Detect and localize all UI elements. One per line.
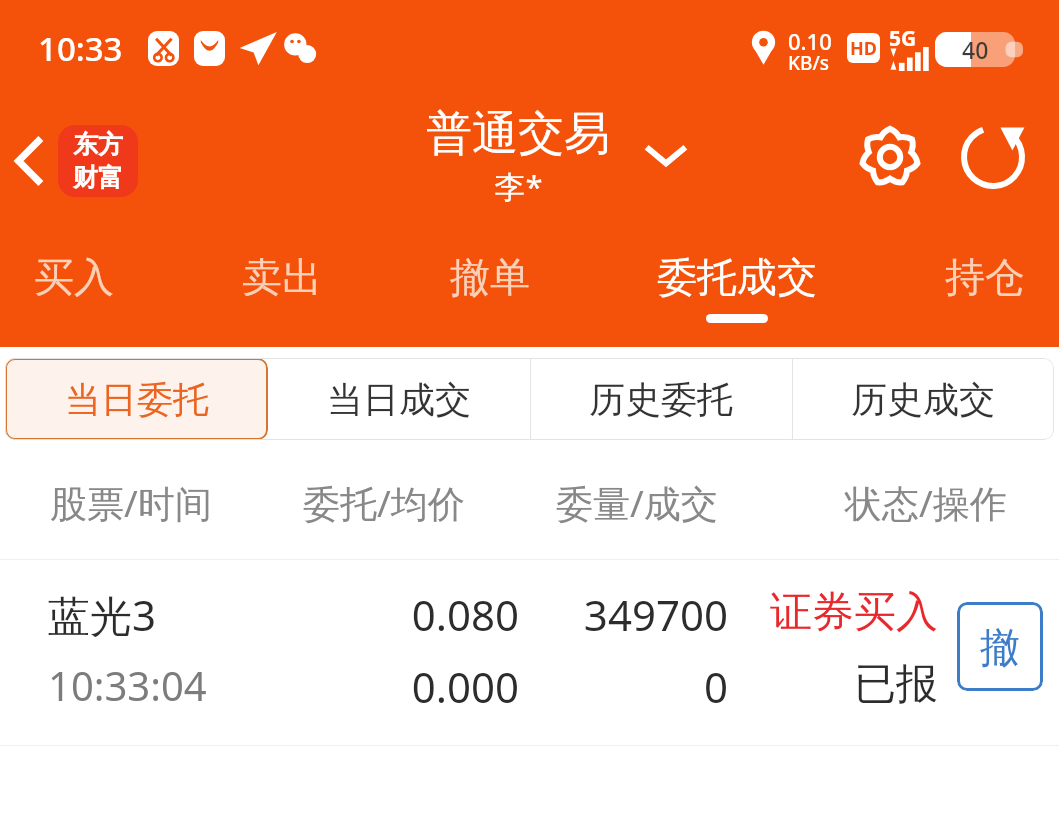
staticText: 李* [494,165,543,207]
staticText: 持仓 [945,252,1025,302]
button[interactable]: 蓝光3 [0,560,1059,745]
button[interactable]: 历史成交 [792,358,1054,440]
staticText: 10:33:04 [48,658,207,712]
staticText: 卖出 [242,252,322,302]
button[interactable]: 撤 [957,602,1043,691]
staticText: 当日成交 [327,377,471,422]
button[interactable]: Settings [848,115,932,199]
staticText: 委量/成交 [556,477,718,528]
staticText: 撤单 [450,252,530,302]
staticText: KB/s [788,50,829,76]
staticText: 状态/操作 [845,477,1007,528]
staticText: 10:33 [38,26,123,71]
staticText: 349700 [488,586,728,643]
staticText: 历史委托 [589,377,733,422]
staticText: 5G [889,24,917,53]
button[interactable]: 普通交易 [393,105,643,207]
staticText: 历史成交 [851,377,995,422]
staticText: 0 [488,658,728,715]
staticText: 0.080 [280,586,519,643]
staticText: 买入 [34,252,114,302]
staticText: 委托成交 [657,252,817,302]
staticText: 40 [962,34,989,65]
staticText: 0.10 [788,26,832,56]
staticText: 股票/时间 [50,477,212,528]
button[interactable]: Refresh [951,115,1035,199]
staticText: 当日委托 [65,377,209,422]
staticText: HD [850,36,877,61]
button[interactable]: 委托成交 [653,250,821,325]
staticText: 委托/均价 [303,477,465,528]
button[interactable]: Back [0,121,60,201]
staticText: 已报 [700,658,938,711]
staticText: 普通交易 [426,105,610,163]
staticText: 蓝光3 [48,586,157,643]
staticText: 0.000 [280,658,519,715]
button[interactable]: 卖出 [238,250,326,316]
button[interactable]: 买入 [30,250,118,316]
staticText: 财富 [73,162,123,193]
button[interactable]: 东方 [58,125,138,197]
button[interactable]: 当日委托 [5,358,268,440]
button[interactable]: 当日成交 [268,358,530,440]
button[interactable]: Switch account [636,125,696,185]
staticText: 撤 [980,622,1020,672]
staticText: 证券买入 [700,586,938,639]
staticText: 东方 [73,129,123,160]
button[interactable]: 持仓 [941,250,1029,316]
button[interactable]: 历史委托 [530,358,792,440]
button[interactable]: 撤单 [446,250,534,316]
